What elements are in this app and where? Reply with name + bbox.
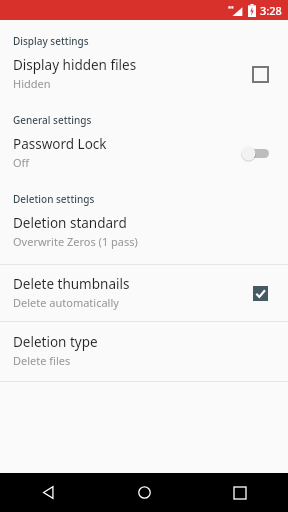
button[interactable]: Delete thumbnails [0, 265, 288, 310]
button[interactable]: Password Lock [0, 127, 288, 170]
button[interactable]: Home [96, 473, 192, 512]
button[interactable]: Deletion standard [0, 206, 288, 249]
staticText: Off [13, 155, 30, 170]
staticText: Delete files [13, 353, 71, 368]
button[interactable]: Checked [245, 278, 275, 308]
staticText: Hidden [13, 76, 51, 91]
staticText: General settings [13, 113, 92, 127]
staticText: Deletion standard [13, 214, 127, 232]
staticText: Password Lock [13, 135, 107, 153]
button[interactable]: Recent apps [192, 473, 288, 512]
button[interactable]: Unchecked [245, 59, 275, 89]
staticText: Deletion settings [13, 192, 95, 206]
staticText: Delete automatically [13, 295, 119, 310]
staticText: 3:28 [260, 3, 282, 18]
button[interactable]: Deletion type [0, 322, 288, 368]
staticText: Overwrite Zeros (1 pass) [13, 234, 138, 249]
staticText: Deletion type [13, 333, 98, 351]
button[interactable]: Back [0, 473, 96, 512]
staticText: Display hidden files [13, 56, 137, 74]
staticText: Display settings [13, 34, 89, 48]
staticText: Delete thumbnails [13, 275, 130, 293]
button[interactable]: Password Lock toggle, off [235, 138, 275, 168]
button[interactable]: Display hidden files [0, 48, 288, 91]
